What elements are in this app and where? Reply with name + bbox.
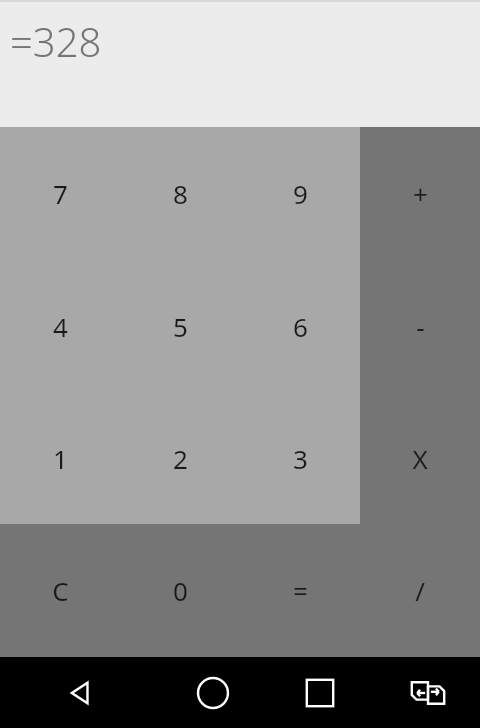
- staticText: /: [415, 573, 425, 608]
- button[interactable]: C: [0, 524, 120, 657]
- staticText: X: [412, 441, 428, 476]
- staticText: 6: [293, 309, 308, 344]
- staticText: 9: [293, 176, 308, 211]
- button[interactable]: =: [240, 524, 360, 657]
- staticText: -: [416, 309, 425, 344]
- staticText: 2: [173, 441, 188, 476]
- button[interactable]: Home: [160, 657, 265, 728]
- button[interactable]: 9: [240, 127, 360, 260]
- button[interactable]: /: [360, 524, 480, 657]
- button[interactable]: Rotate screen: [375, 657, 480, 728]
- button[interactable]: 0: [120, 524, 240, 657]
- button[interactable]: 4: [0, 260, 120, 392]
- button[interactable]: 3: [240, 392, 360, 524]
- staticText: =: [293, 573, 308, 608]
- button[interactable]: 1: [0, 392, 120, 524]
- button[interactable]: Recent apps: [265, 657, 375, 728]
- button[interactable]: Back: [0, 657, 160, 728]
- staticText: C: [52, 573, 69, 608]
- button[interactable]: 5: [120, 260, 240, 392]
- staticText: +: [413, 176, 428, 211]
- staticText: 1: [53, 441, 68, 476]
- button[interactable]: +: [360, 127, 480, 260]
- button[interactable]: 8: [120, 127, 240, 260]
- button[interactable]: X: [360, 392, 480, 524]
- staticText: =328: [10, 14, 102, 68]
- button[interactable]: 7: [0, 127, 120, 260]
- staticText: 5: [173, 309, 188, 344]
- staticText: 8: [173, 176, 188, 211]
- staticText: 3: [293, 441, 308, 476]
- button[interactable]: 6: [240, 260, 360, 392]
- button[interactable]: 2: [120, 392, 240, 524]
- staticText: 7: [53, 176, 68, 211]
- staticText: 0: [173, 573, 188, 608]
- staticText: 4: [53, 309, 68, 344]
